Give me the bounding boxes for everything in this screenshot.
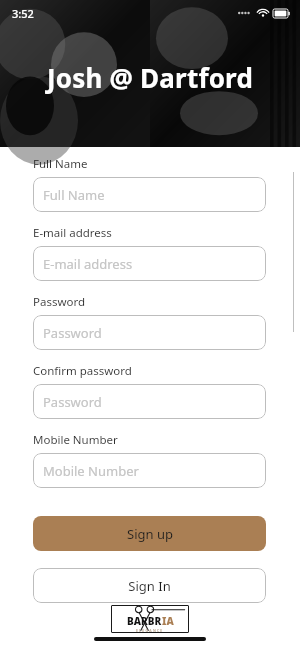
staticText: Full Name bbox=[43, 186, 105, 204]
button[interactable]: Password bbox=[33, 384, 266, 419]
staticText: E-mail address bbox=[43, 255, 133, 273]
staticText: BARBR bbox=[127, 614, 162, 628]
staticText: Password bbox=[43, 393, 102, 411]
staticText: Confirm password bbox=[33, 363, 132, 379]
button[interactable]: Sign In bbox=[33, 568, 266, 603]
button[interactable]: Password bbox=[33, 315, 266, 350]
staticText: Josh @ Dartford bbox=[47, 60, 254, 95]
staticText: Mobile Number bbox=[43, 462, 139, 480]
staticText: Password bbox=[43, 324, 102, 342]
staticText: Sign In bbox=[128, 577, 171, 595]
staticText: IA bbox=[162, 614, 174, 628]
staticText: Full Name bbox=[33, 156, 88, 172]
button[interactable]: Mobile Number bbox=[33, 453, 266, 488]
staticText: 3:52 bbox=[12, 6, 34, 21]
staticText: Sign up bbox=[127, 525, 173, 543]
button[interactable]: Full Name bbox=[33, 177, 266, 212]
staticText: E-mail address bbox=[33, 225, 112, 241]
button[interactable]: Sign up bbox=[33, 516, 266, 551]
staticText: Password bbox=[33, 294, 86, 310]
staticText: Mobile Number bbox=[33, 432, 118, 448]
button[interactable]: E-mail address bbox=[33, 246, 266, 281]
staticText: ELEGANCE bbox=[136, 628, 164, 633]
